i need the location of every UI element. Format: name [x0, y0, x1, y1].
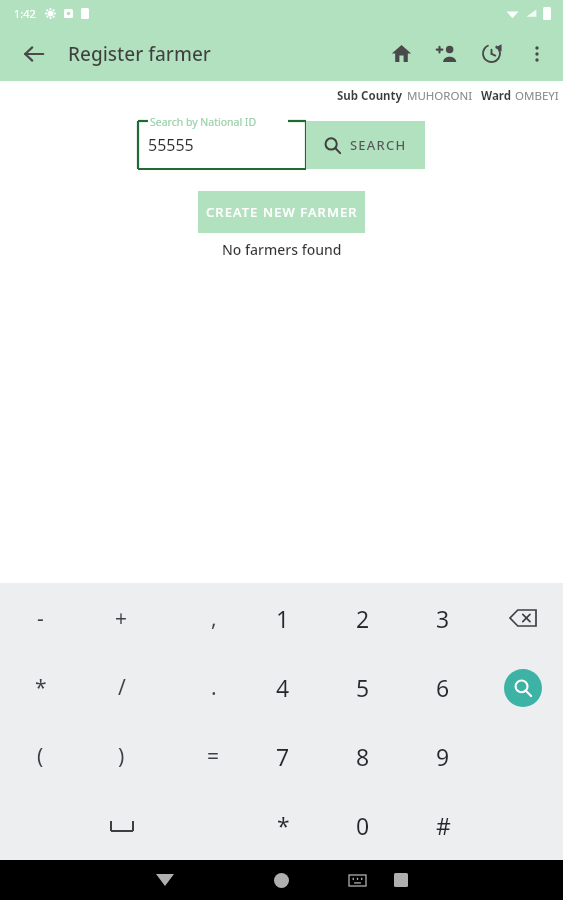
button[interactable]: .: [162, 653, 243, 722]
staticText: Ward: [481, 88, 511, 104]
staticText: 7: [276, 741, 290, 772]
button[interactable]: -: [0, 583, 81, 653]
button[interactable]: 1: [243, 583, 323, 653]
staticText: #: [436, 810, 451, 841]
button[interactable]: /: [81, 653, 162, 722]
staticText: =: [207, 742, 220, 771]
staticText: +: [115, 604, 128, 633]
button[interactable]: 0: [323, 791, 403, 860]
staticText: CREATE NEW FARMER: [206, 203, 358, 221]
button[interactable]: +: [81, 583, 162, 653]
button[interactable]: 7: [243, 722, 323, 791]
button[interactable]: Home: [261, 860, 301, 900]
button[interactable]: History: [469, 31, 514, 76]
staticText: ): [118, 742, 125, 771]
button[interactable]: More options: [514, 31, 559, 76]
staticText: 6: [436, 672, 450, 703]
staticText: MUHORONI: [407, 88, 473, 104]
button[interactable]: Backspace: [483, 583, 563, 653]
button[interactable]: Back: [10, 30, 58, 78]
button[interactable]: *: [0, 653, 81, 722]
staticText: SEARCH: [350, 136, 407, 154]
staticText: 2: [356, 603, 370, 634]
staticText: ,: [211, 604, 217, 633]
button[interactable]: ,: [162, 583, 243, 653]
staticText: Search by National ID: [150, 115, 257, 129]
staticText: .: [211, 673, 217, 702]
staticText: *: [277, 810, 290, 841]
staticText: Sub County: [337, 88, 403, 104]
staticText: *: [35, 673, 47, 702]
button[interactable]: Recent apps: [381, 860, 421, 900]
button[interactable]: 9: [403, 722, 483, 791]
button[interactable]: Search by National ID: [138, 121, 306, 169]
button[interactable]: Search: [483, 653, 563, 722]
button[interactable]: Switch keyboard: [339, 862, 375, 898]
staticText: 9: [436, 741, 450, 772]
staticText: 3: [436, 603, 450, 634]
button[interactable]: Hide keyboard: [145, 860, 185, 900]
button[interactable]: 6: [403, 653, 483, 722]
staticText: 0: [356, 810, 370, 841]
staticText: 1: [276, 603, 290, 634]
button[interactable]: Home: [379, 31, 424, 76]
button[interactable]: #: [403, 791, 483, 860]
button[interactable]: SEARCH: [306, 121, 425, 169]
button[interactable]: Add farmer: [424, 31, 469, 76]
button[interactable]: =: [162, 722, 243, 791]
staticText: No farmers found: [222, 240, 342, 259]
staticText: /: [118, 673, 126, 702]
button[interactable]: 2: [323, 583, 403, 653]
staticText: 1:42: [14, 6, 36, 21]
staticText: 8: [356, 741, 370, 772]
button[interactable]: (: [0, 722, 81, 791]
staticText: Register farmer: [68, 41, 211, 67]
staticText: OMBEYI: [515, 88, 559, 104]
staticText: 5: [356, 672, 370, 703]
button[interactable]: 5: [323, 653, 403, 722]
button[interactable]: CREATE NEW FARMER: [198, 191, 365, 233]
button[interactable]: 3: [403, 583, 483, 653]
staticText: 55555: [148, 134, 194, 156]
staticText: (: [37, 742, 44, 771]
staticText: 4: [276, 672, 290, 703]
button[interactable]: 4: [243, 653, 323, 722]
button[interactable]: [81, 791, 162, 860]
button[interactable]: 8: [323, 722, 403, 791]
button[interactable]: ): [81, 722, 162, 791]
staticText: -: [37, 604, 44, 633]
button[interactable]: *: [243, 791, 323, 860]
